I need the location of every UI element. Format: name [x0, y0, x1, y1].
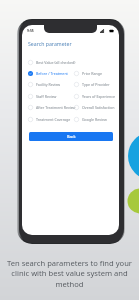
button[interactable]: Overall Satisfaction [74, 103, 119, 112]
staticText: 9:55 [27, 28, 34, 33]
button[interactable]: Back [29, 132, 113, 141]
button[interactable]: Best Value (all checked) [28, 58, 106, 67]
staticText: Before / Treatment [36, 71, 68, 76]
button[interactable]: Years of Experience [74, 92, 119, 101]
staticText: Treatment Coverage [36, 117, 71, 122]
button[interactable]: After Treatment Review [28, 103, 80, 112]
staticText: Staff Review [36, 94, 57, 99]
button[interactable]: Treatment Coverage [28, 115, 80, 124]
staticText: Overall Satisfaction [82, 105, 115, 110]
staticText: After Treatment Review [36, 105, 76, 110]
staticText: Ten search parameters to find your clini… [7, 258, 132, 290]
button[interactable]: Before / Treatment [28, 69, 80, 78]
staticText: Best Value (all checked) [36, 60, 76, 65]
staticText: Type of Provider [82, 82, 110, 87]
button[interactable]: Facility Review [28, 80, 80, 89]
staticText: Price Range [82, 71, 102, 76]
staticText: Search parameter [28, 40, 72, 47]
staticText: Facility Review [36, 82, 61, 87]
button[interactable]: Google Review [74, 115, 119, 124]
staticText: Years of Experience [82, 94, 115, 99]
staticText: Google Review [82, 117, 107, 122]
staticText: Back [67, 134, 76, 139]
button[interactable]: Price Range [74, 69, 119, 78]
button[interactable]: Type of Provider [74, 80, 119, 89]
button[interactable]: Staff Review [28, 92, 80, 101]
